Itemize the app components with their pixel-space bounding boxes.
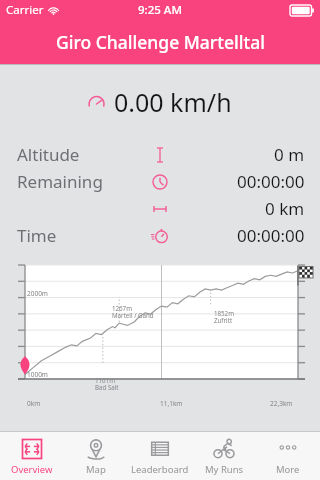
button[interactable]: Remaining <box>0 168 320 195</box>
staticText: 2000m <box>27 289 48 298</box>
staticText: Carrier <box>6 2 44 18</box>
staticText: 0.00 km/h <box>114 85 232 119</box>
button[interactable]: More <box>256 431 320 480</box>
staticText: 22,3km <box>270 399 293 408</box>
staticText: 0 km <box>265 197 305 220</box>
staticText: 1267m <box>112 304 132 312</box>
button[interactable]: Map <box>64 431 128 480</box>
staticText: Time <box>17 224 57 247</box>
staticText: Remaining <box>17 170 103 193</box>
staticText: Altitude <box>17 143 80 166</box>
button[interactable]: Overview <box>0 431 64 480</box>
staticText: Map <box>86 463 106 476</box>
button[interactable]: My Runs <box>192 431 256 480</box>
button[interactable]: 0 km <box>0 195 320 222</box>
button[interactable]: Leaderboard <box>128 431 192 480</box>
staticText: 1852m <box>214 309 234 317</box>
button[interactable]: Time <box>0 222 320 249</box>
staticText: Overview <box>11 463 53 476</box>
staticText: 00:00:00 <box>237 224 305 247</box>
staticText: Zufritt <box>214 316 233 324</box>
staticText: 0km <box>27 399 41 408</box>
staticText: 0 m <box>274 143 305 166</box>
staticText: Leaderboard <box>131 463 189 476</box>
button[interactable]: Altitude <box>0 141 320 168</box>
staticText: Bad Salt <box>95 383 119 391</box>
staticText: More <box>276 463 300 476</box>
staticText: Giro Challenge Martelltal <box>56 30 265 54</box>
staticText: 1161m <box>95 376 115 384</box>
staticText: 9:25 AM <box>138 2 182 18</box>
staticText: 1000m <box>27 370 48 379</box>
staticText: 00:00:00 <box>237 170 305 193</box>
staticText: Martell / Gand <box>112 311 154 319</box>
staticText: My Runs <box>205 463 244 476</box>
staticText: 11,1km <box>160 399 183 408</box>
